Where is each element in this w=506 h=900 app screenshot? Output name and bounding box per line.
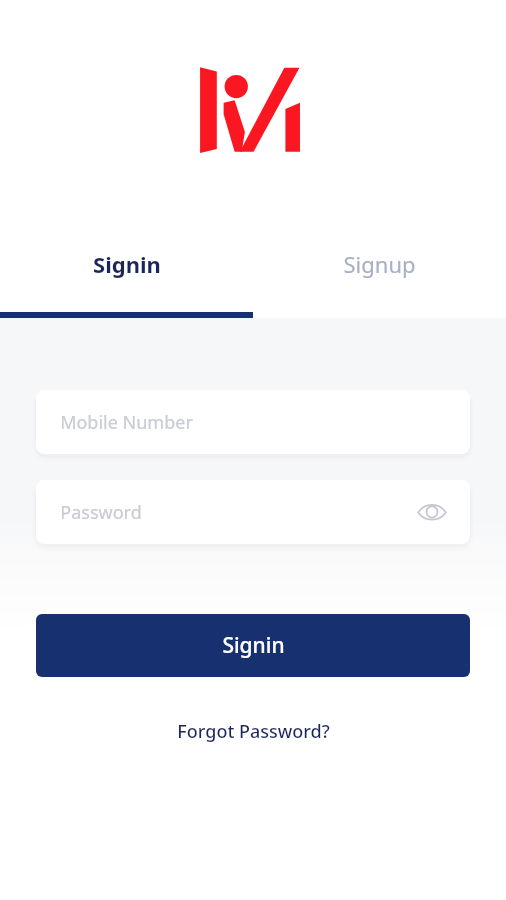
staticText: Signin [222,631,285,660]
button[interactable]: Show password [414,494,450,530]
button[interactable]: Signin [36,614,470,677]
button[interactable]: Forgot Password? [161,713,346,750]
staticText: Signup [343,249,416,279]
staticText: Forgot Password? [177,719,330,744]
button[interactable]: Signup [253,230,506,318]
button[interactable]: Password [36,480,470,544]
staticText: Password [60,500,142,525]
button[interactable]: Signin [0,230,253,318]
button[interactable]: Mobile Number [36,390,470,454]
staticText: Mobile Number [60,410,193,435]
staticText: Signin [93,249,161,279]
